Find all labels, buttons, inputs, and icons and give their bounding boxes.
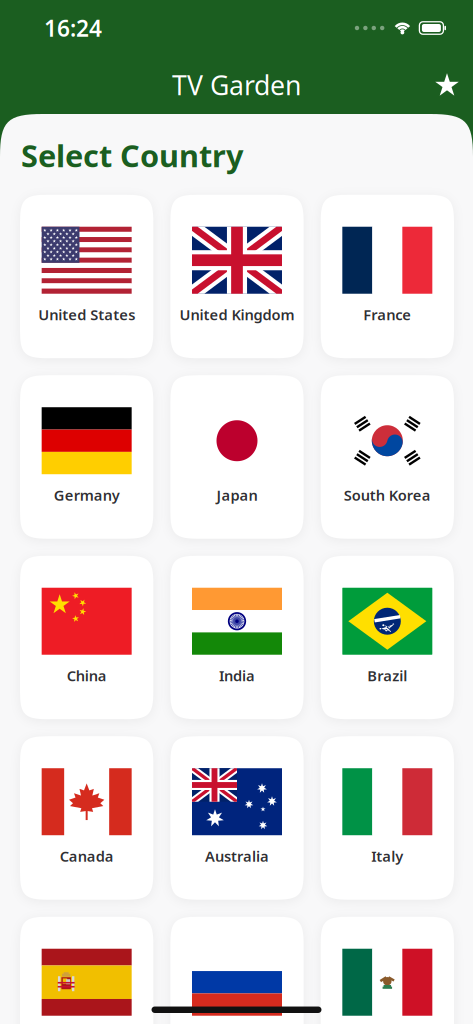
button[interactable]: France (321, 195, 454, 358)
staticText: China (67, 666, 107, 685)
button[interactable]: Australia (170, 736, 304, 900)
staticText: Brazil (367, 666, 407, 685)
staticText: South Korea (344, 485, 431, 505)
button[interactable]: United States (20, 195, 153, 358)
staticText: TV Garden (172, 67, 301, 103)
staticText: Japan (216, 485, 257, 505)
staticText: India (219, 666, 255, 685)
button[interactable]: South Korea (321, 375, 454, 539)
staticText: 16:24 (44, 13, 102, 43)
button[interactable]: Russia (170, 917, 304, 1024)
button[interactable]: Germany (20, 375, 153, 539)
staticText: Australia (205, 846, 269, 866)
button[interactable]: India (170, 556, 304, 719)
button[interactable]: Favorites (427, 65, 467, 105)
button[interactable]: Brazil (321, 556, 454, 719)
staticText: Germany (54, 485, 120, 505)
button[interactable]: Spain (20, 917, 153, 1024)
staticText: Canada (60, 846, 114, 866)
button[interactable]: Japan (170, 375, 304, 539)
staticText: France (363, 305, 411, 324)
button[interactable]: Mexico (321, 917, 454, 1024)
staticText: United States (38, 305, 135, 324)
button[interactable]: Italy (321, 736, 454, 900)
staticText: Italy (371, 846, 403, 866)
button[interactable]: Canada (20, 736, 153, 900)
staticText: Select Country (21, 135, 244, 176)
button[interactable]: China (20, 556, 153, 719)
staticText: United Kingdom (179, 305, 294, 324)
button[interactable]: United Kingdom (170, 195, 304, 358)
